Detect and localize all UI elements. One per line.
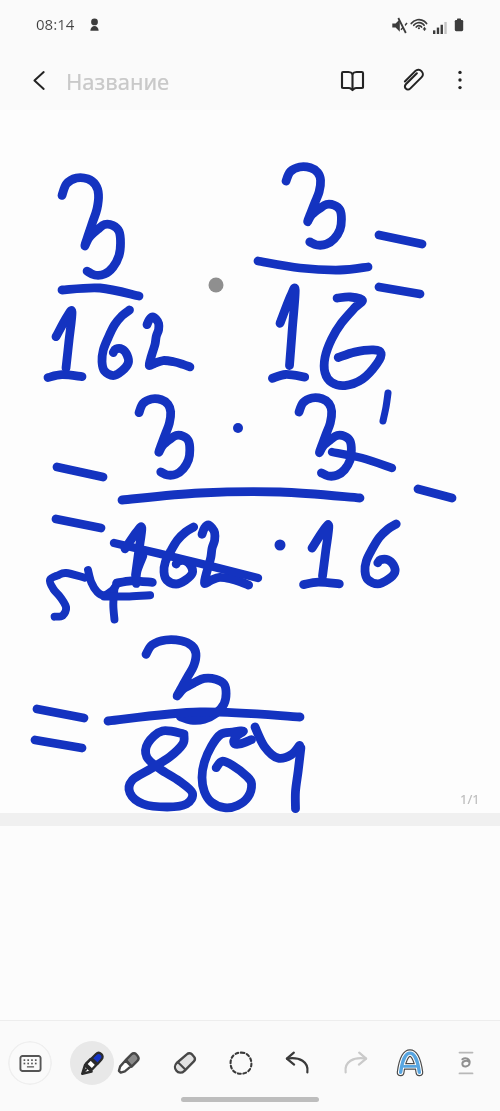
staticText: Название — [66, 66, 170, 96]
button[interactable]: Convert to text — [388, 1041, 432, 1085]
button[interactable]: Notebook — [330, 58, 374, 102]
button[interactable]: Eraser — [163, 1041, 207, 1085]
button[interactable]: Undo — [276, 1041, 320, 1085]
button[interactable]: Keyboard — [8, 1041, 52, 1085]
button[interactable]: Select — [219, 1041, 263, 1085]
button[interactable]: More tools — [444, 1041, 488, 1085]
staticText: 1/1 — [460, 790, 480, 808]
button[interactable]: Highlighter — [106, 1041, 150, 1085]
button[interactable]: Back — [18, 59, 60, 101]
button[interactable]: More options — [440, 60, 480, 100]
staticText: 08:14 — [36, 14, 75, 34]
button[interactable]: Pen — [70, 1041, 114, 1085]
button[interactable]: Redo — [333, 1041, 377, 1085]
button[interactable]: Attach — [392, 58, 436, 102]
